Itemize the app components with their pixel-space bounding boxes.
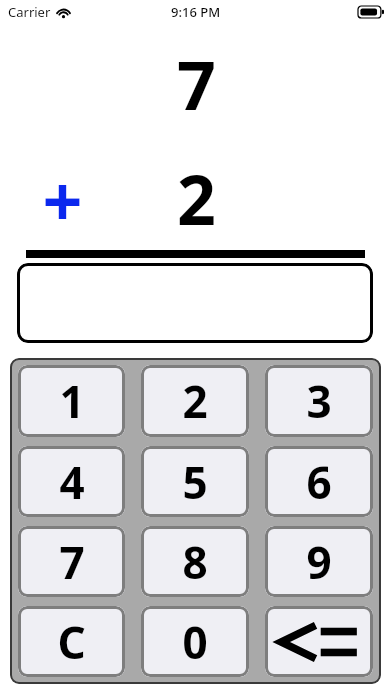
staticText: 8	[182, 532, 208, 592]
staticText: 9:16 PM	[171, 3, 221, 21]
button[interactable]: 0	[141, 606, 249, 677]
button[interactable]: 7	[18, 526, 125, 597]
staticText: 3	[306, 371, 332, 431]
staticText: Carrier	[8, 3, 51, 21]
staticText: +	[42, 152, 83, 228]
button[interactable]: 3	[265, 365, 373, 437]
staticText: 0	[182, 612, 208, 672]
staticText: 6	[306, 452, 332, 512]
button[interactable]: 4	[18, 446, 125, 517]
staticText: 7	[59, 532, 85, 592]
staticText: 2	[177, 152, 216, 228]
button[interactable]: 6	[265, 446, 373, 517]
button[interactable]	[17, 263, 373, 343]
button[interactable]: 9	[265, 526, 373, 597]
staticText: 7	[177, 38, 216, 110]
button[interactable]: 8	[141, 526, 249, 597]
button[interactable]: Backspace	[265, 606, 373, 677]
staticText: C	[57, 612, 86, 672]
staticText: 9	[306, 532, 332, 592]
button[interactable]: Clear	[18, 606, 125, 677]
staticText: 1	[59, 371, 85, 431]
staticText: 2	[182, 371, 208, 431]
button[interactable]: 2	[141, 365, 249, 437]
button[interactable]: 5	[141, 446, 249, 517]
button[interactable]: 1	[18, 365, 125, 437]
staticText: 4	[59, 452, 85, 512]
staticText: 5	[182, 452, 208, 512]
